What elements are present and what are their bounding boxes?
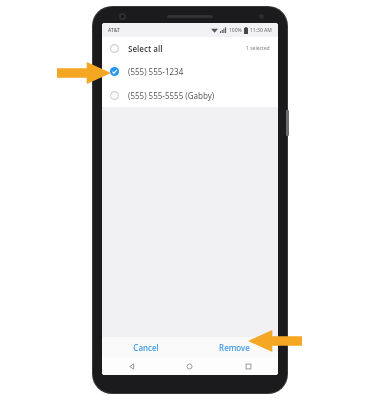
staticText: (555) 555-1234 bbox=[128, 66, 184, 77]
button[interactable]: Home bbox=[160, 357, 219, 375]
staticText: AT&T bbox=[108, 27, 120, 34]
button[interactable]: Remove bbox=[190, 337, 278, 357]
staticText: 100% bbox=[229, 27, 242, 34]
staticText: 11:30 AM bbox=[250, 27, 272, 34]
staticText: Remove bbox=[219, 342, 250, 353]
button[interactable]: Cancel bbox=[102, 337, 190, 357]
button[interactable]: Select all bbox=[102, 37, 278, 59]
staticText: Cancel bbox=[133, 342, 159, 353]
button[interactable]: (555) 555-1234 bbox=[102, 59, 278, 83]
button[interactable]: Recent apps bbox=[219, 357, 278, 375]
button[interactable]: Back bbox=[102, 357, 160, 375]
staticText: (555) 555-5555 (Gabby) bbox=[128, 90, 215, 101]
button[interactable]: (555) 555-5555 (Gabby) bbox=[102, 83, 278, 107]
staticText: Select all bbox=[128, 43, 163, 54]
staticText: 1 selected bbox=[246, 45, 270, 52]
